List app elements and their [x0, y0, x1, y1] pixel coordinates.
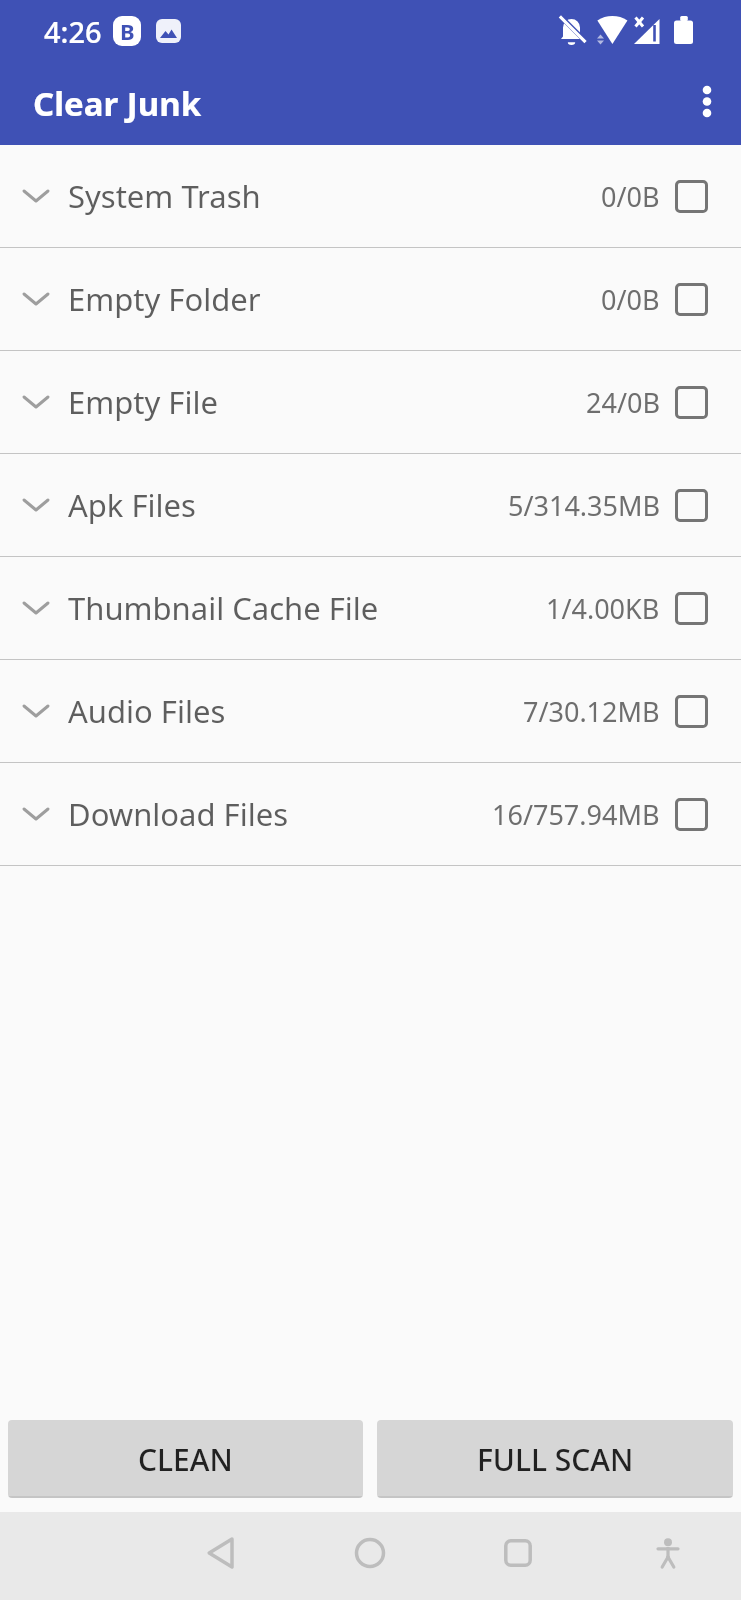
- button[interactable]: [496, 1531, 540, 1575]
- button[interactable]: [675, 386, 708, 419]
- button[interactable]: Audio Files: [0, 660, 741, 762]
- staticText: 5/314.35MB: [508, 487, 660, 524]
- staticText: Download Files: [68, 793, 288, 835]
- staticText: 24/0B: [586, 384, 660, 421]
- button[interactable]: FULL SCAN: [377, 1420, 733, 1498]
- staticText: B: [120, 16, 135, 46]
- staticText: 7/30.12MB: [523, 693, 660, 730]
- staticText: 0/0B: [601, 281, 660, 318]
- staticText: Clear Junk: [33, 81, 202, 126]
- staticText: 16/757.94MB: [492, 796, 660, 833]
- button[interactable]: [675, 283, 708, 316]
- staticText: 1/4.00KB: [546, 590, 660, 627]
- button[interactable]: Apk Files: [0, 454, 741, 556]
- button[interactable]: Thumbnail Cache File: [0, 557, 741, 659]
- button[interactable]: [675, 489, 708, 522]
- button[interactable]: Empty Folder: [0, 248, 741, 350]
- staticText: System Trash: [68, 175, 261, 217]
- staticText: Empty Folder: [68, 278, 261, 320]
- button[interactable]: [646, 1531, 690, 1575]
- button[interactable]: Download Files: [0, 763, 741, 865]
- button[interactable]: [700, 80, 714, 128]
- staticText: FULL SCAN: [477, 1439, 634, 1480]
- button[interactable]: [675, 592, 708, 625]
- button[interactable]: [348, 1531, 392, 1575]
- staticText: 0/0B: [601, 178, 660, 215]
- staticText: Empty File: [68, 381, 218, 423]
- button[interactable]: [675, 180, 708, 213]
- button[interactable]: [675, 695, 708, 728]
- button[interactable]: [675, 798, 708, 831]
- button[interactable]: CLEAN: [8, 1420, 363, 1498]
- button[interactable]: [199, 1531, 243, 1575]
- staticText: Audio Files: [68, 690, 226, 732]
- button[interactable]: Empty File: [0, 351, 741, 453]
- staticText: Apk Files: [68, 484, 196, 526]
- button[interactable]: System Trash: [0, 145, 741, 247]
- staticText: 4:26: [44, 12, 102, 51]
- staticText: CLEAN: [138, 1439, 233, 1480]
- staticText: Thumbnail Cache File: [68, 587, 379, 629]
